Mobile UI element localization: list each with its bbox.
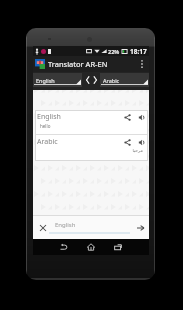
staticText: Translator AR-EN xyxy=(48,59,108,69)
staticText: Arabic xyxy=(37,137,58,147)
staticText: English xyxy=(55,221,76,229)
staticText: hello xyxy=(40,123,143,129)
button[interactable]: Recent apps xyxy=(108,239,128,255)
staticText: 22% xyxy=(108,48,120,55)
button[interactable]: More options xyxy=(138,57,146,71)
button[interactable]: Share xyxy=(123,138,131,146)
button[interactable]: Translate xyxy=(135,222,146,233)
button[interactable]: Arabic xyxy=(35,135,148,161)
staticText: English xyxy=(36,77,55,84)
button[interactable]: English xyxy=(35,110,148,134)
button[interactable]: Speak xyxy=(137,113,145,121)
button[interactable]: English xyxy=(49,219,130,236)
staticText: English xyxy=(37,112,61,122)
button[interactable]: English xyxy=(33,73,82,87)
staticText: Arabic xyxy=(103,77,120,84)
button[interactable]: Home xyxy=(81,239,101,255)
staticText: مرحبا xyxy=(40,148,143,153)
button[interactable]: Arabic xyxy=(100,73,149,87)
button[interactable]: Swap languages xyxy=(82,72,100,90)
button[interactable]: Share xyxy=(123,113,131,121)
staticText: 18:17 xyxy=(130,47,147,56)
button[interactable]: Speak xyxy=(137,138,145,146)
button[interactable]: Clear xyxy=(37,222,48,233)
button[interactable]: Back xyxy=(54,239,74,255)
